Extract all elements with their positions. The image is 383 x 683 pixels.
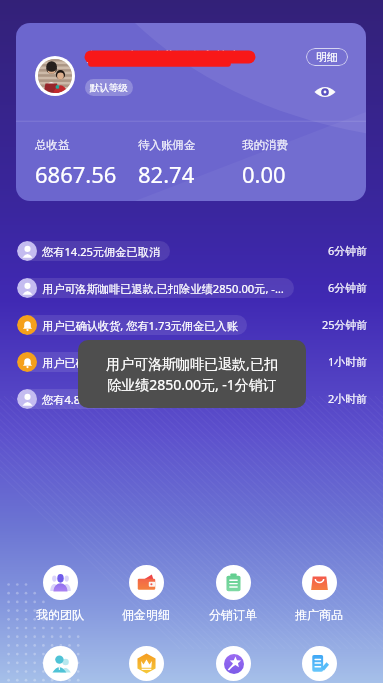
staticText: 推广商品	[295, 607, 343, 622]
staticText: 待入账佣金	[138, 138, 196, 152]
staticText: 总收益	[35, 138, 70, 152]
button[interactable]: 您有4.80元佣金已入账	[0, 380, 383, 417]
staticText: 6分钟前	[328, 280, 368, 295]
button[interactable]: 推广商品	[279, 565, 359, 622]
staticText: 82.74	[138, 159, 195, 189]
staticText: 用户已确认收货, 您有1.73元佣金已入账	[42, 318, 238, 333]
button[interactable]: 佣金明细	[106, 565, 186, 622]
staticText: 25分钟前	[322, 317, 368, 332]
staticText: 6分钟前	[328, 243, 368, 258]
staticText: 用户可洛斯咖啡已退款,已扣 除业绩2850.00元, -1分销订	[106, 354, 278, 395]
staticText: 您有4.80元佣金已入账	[42, 392, 154, 407]
staticText: 用户可洛斯咖啡已退款,已扣除业绩2850.00元, -1分销订单	[42, 281, 285, 296]
button[interactable]: 用户已确认收货, 您有1.73元佣金已入账	[0, 306, 383, 343]
staticText: 默认等级	[90, 82, 128, 94]
staticText: 6867.56	[35, 159, 117, 189]
staticText: 明细	[316, 50, 338, 64]
button[interactable]: 快捷入口	[193, 646, 273, 681]
staticText: 会员昵称已隐藏正在审核中)	[85, 47, 245, 65]
button[interactable]: 用户可洛斯咖啡已退款,已扣除业绩2850.00元, -1分销订单	[0, 269, 383, 306]
staticText: 2小时前	[328, 391, 368, 406]
button[interactable]: 您有14.25元佣金已取消	[0, 232, 383, 269]
button[interactable]: 分销订单	[193, 565, 273, 622]
staticText: 您有14.25元佣金已取消	[42, 244, 161, 259]
staticText: 佣金明细	[122, 607, 170, 622]
staticText: 用户已确认收货, 您有1.73元佣金已入账	[42, 355, 238, 370]
button[interactable]: 快捷入口	[20, 646, 100, 681]
staticText: 分销订单	[209, 607, 257, 622]
staticText: 我的消费	[242, 138, 288, 152]
staticText: 0.00	[242, 159, 286, 189]
button[interactable]: 我的团队	[20, 565, 100, 622]
staticText: 1小时前	[328, 354, 368, 369]
button[interactable]: 显示金额	[311, 78, 339, 106]
staticText: 我的团队	[36, 607, 84, 622]
button[interactable]: 快捷入口	[106, 646, 186, 681]
button[interactable]: 快捷入口	[279, 646, 359, 681]
button[interactable]: 用户已确认收货, 您有1.73元佣金已入账	[0, 343, 383, 380]
button[interactable]: 明细	[306, 48, 348, 66]
